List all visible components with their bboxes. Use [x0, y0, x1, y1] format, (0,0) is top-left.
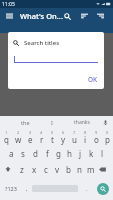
staticText: y [61, 134, 66, 145]
button[interactable]: , [22, 177, 32, 200]
staticText: v [55, 164, 60, 175]
button[interactable]: OK [83, 73, 103, 86]
staticText: c [44, 164, 48, 175]
staticText: the [21, 119, 30, 126]
button[interactable]: s [17, 145, 29, 161]
staticText: 2 [17, 130, 20, 135]
staticText: u [72, 134, 77, 145]
staticText: j [79, 148, 82, 159]
staticText: q [4, 134, 9, 145]
staticText: OK [88, 75, 98, 84]
staticText: 9 [95, 130, 98, 135]
staticText: l [101, 148, 104, 159]
button[interactable]: n [74, 161, 85, 177]
staticText: i [84, 134, 87, 145]
staticText: d [33, 148, 38, 159]
button[interactable]: 7 [69, 129, 80, 145]
staticText: p [105, 134, 110, 145]
button[interactable]: g [53, 145, 64, 161]
staticText: ?123 [5, 185, 17, 192]
button[interactable]: More options [93, 9, 107, 23]
staticText: m [87, 164, 95, 175]
button[interactable]: thanks [66, 116, 98, 129]
button[interactable]: a [5, 145, 17, 161]
button[interactable]: m [85, 161, 96, 177]
staticText: b [66, 164, 71, 175]
button[interactable]: the [10, 116, 40, 129]
staticText: I [51, 119, 53, 126]
staticText: Search titles [24, 39, 60, 47]
staticText: t [51, 134, 54, 145]
button[interactable]: ?123 [0, 177, 22, 200]
button[interactable]: 0 [102, 129, 113, 145]
staticText: k [89, 148, 94, 159]
staticText: 11:05 [2, 1, 15, 8]
button[interactable]: l [97, 145, 108, 161]
button[interactable]: 9 [91, 129, 102, 145]
staticText: 1 [5, 130, 8, 135]
button[interactable]: Voice input [98, 116, 112, 129]
staticText: thanks [74, 119, 90, 126]
staticText: a [9, 148, 14, 159]
staticText: s [21, 148, 25, 159]
staticText: 0 [106, 130, 109, 135]
button[interactable]: x [28, 161, 40, 177]
button[interactable]: 3 [24, 129, 36, 145]
button[interactable]: z [16, 161, 28, 177]
button[interactable]: j [75, 145, 86, 161]
staticText: 7 [73, 130, 76, 135]
button[interactable]: Shift [0, 161, 16, 177]
button[interactable]: 4 [36, 129, 47, 145]
button[interactable]: 2 [12, 129, 24, 145]
staticText: What's On... [20, 11, 63, 21]
staticText: w [15, 134, 22, 145]
staticText: . [86, 185, 88, 193]
button[interactable]: 6 [58, 129, 69, 145]
button[interactable]: b [63, 161, 74, 177]
button[interactable]: d [29, 145, 41, 161]
button[interactable]: c [40, 161, 52, 177]
button[interactable]: Navigation menu [2, 9, 16, 23]
button[interactable]: Sort [77, 9, 91, 23]
button[interactable]: 5 [47, 129, 58, 145]
staticText: e [28, 134, 33, 145]
staticText: 8 [84, 130, 87, 135]
button[interactable]: Backspace [96, 161, 113, 177]
staticText: f [46, 148, 49, 159]
staticText: 5 [51, 130, 54, 135]
staticText: r [40, 134, 44, 145]
button[interactable]: v [52, 161, 63, 177]
button[interactable]: h [64, 145, 75, 161]
staticText: n [77, 164, 82, 175]
staticText: z [20, 164, 24, 175]
button[interactable]: 8 [80, 129, 91, 145]
staticText: x [32, 164, 37, 175]
staticText: g [56, 148, 61, 159]
staticText: , [26, 185, 28, 193]
button[interactable]: f [41, 145, 53, 161]
button[interactable]: Enter [92, 177, 113, 200]
staticText: o [94, 134, 99, 145]
button[interactable]: 1 [0, 129, 12, 145]
button[interactable]: k [86, 145, 97, 161]
staticText: 3 [29, 130, 32, 135]
staticText: 4 [40, 130, 43, 135]
button[interactable]: Search [60, 9, 74, 23]
button[interactable]: . [82, 177, 92, 200]
button[interactable]: I [40, 116, 64, 129]
staticText: h [67, 148, 72, 159]
staticText: 6 [62, 130, 65, 135]
